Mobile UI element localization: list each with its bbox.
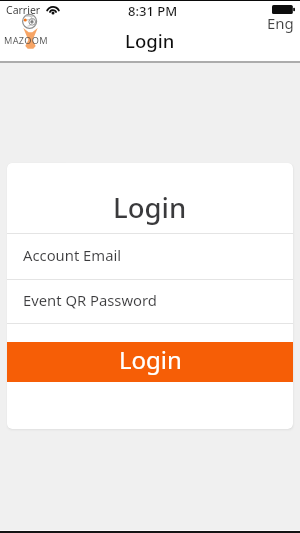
staticText: Eng: [267, 13, 294, 33]
button[interactable]: Login: [7, 342, 293, 382]
button[interactable]: Account Email: [7, 234, 293, 279]
staticText: MAZOOM: [4, 34, 48, 47]
staticText: Event QR Password: [23, 290, 157, 310]
staticText: Carrier: [6, 3, 41, 17]
staticText: Login: [113, 189, 187, 226]
staticText: 8:31 PM: [128, 2, 178, 20]
staticText: Login: [125, 28, 175, 53]
staticText: Login: [119, 343, 182, 376]
button[interactable]: Eng: [264, 12, 297, 34]
button[interactable]: Event QR Password: [7, 280, 293, 323]
staticText: Account Email: [23, 245, 122, 265]
button[interactable]: Mazoom logo: [4, 13, 54, 53]
other: Battery: [272, 5, 295, 14]
